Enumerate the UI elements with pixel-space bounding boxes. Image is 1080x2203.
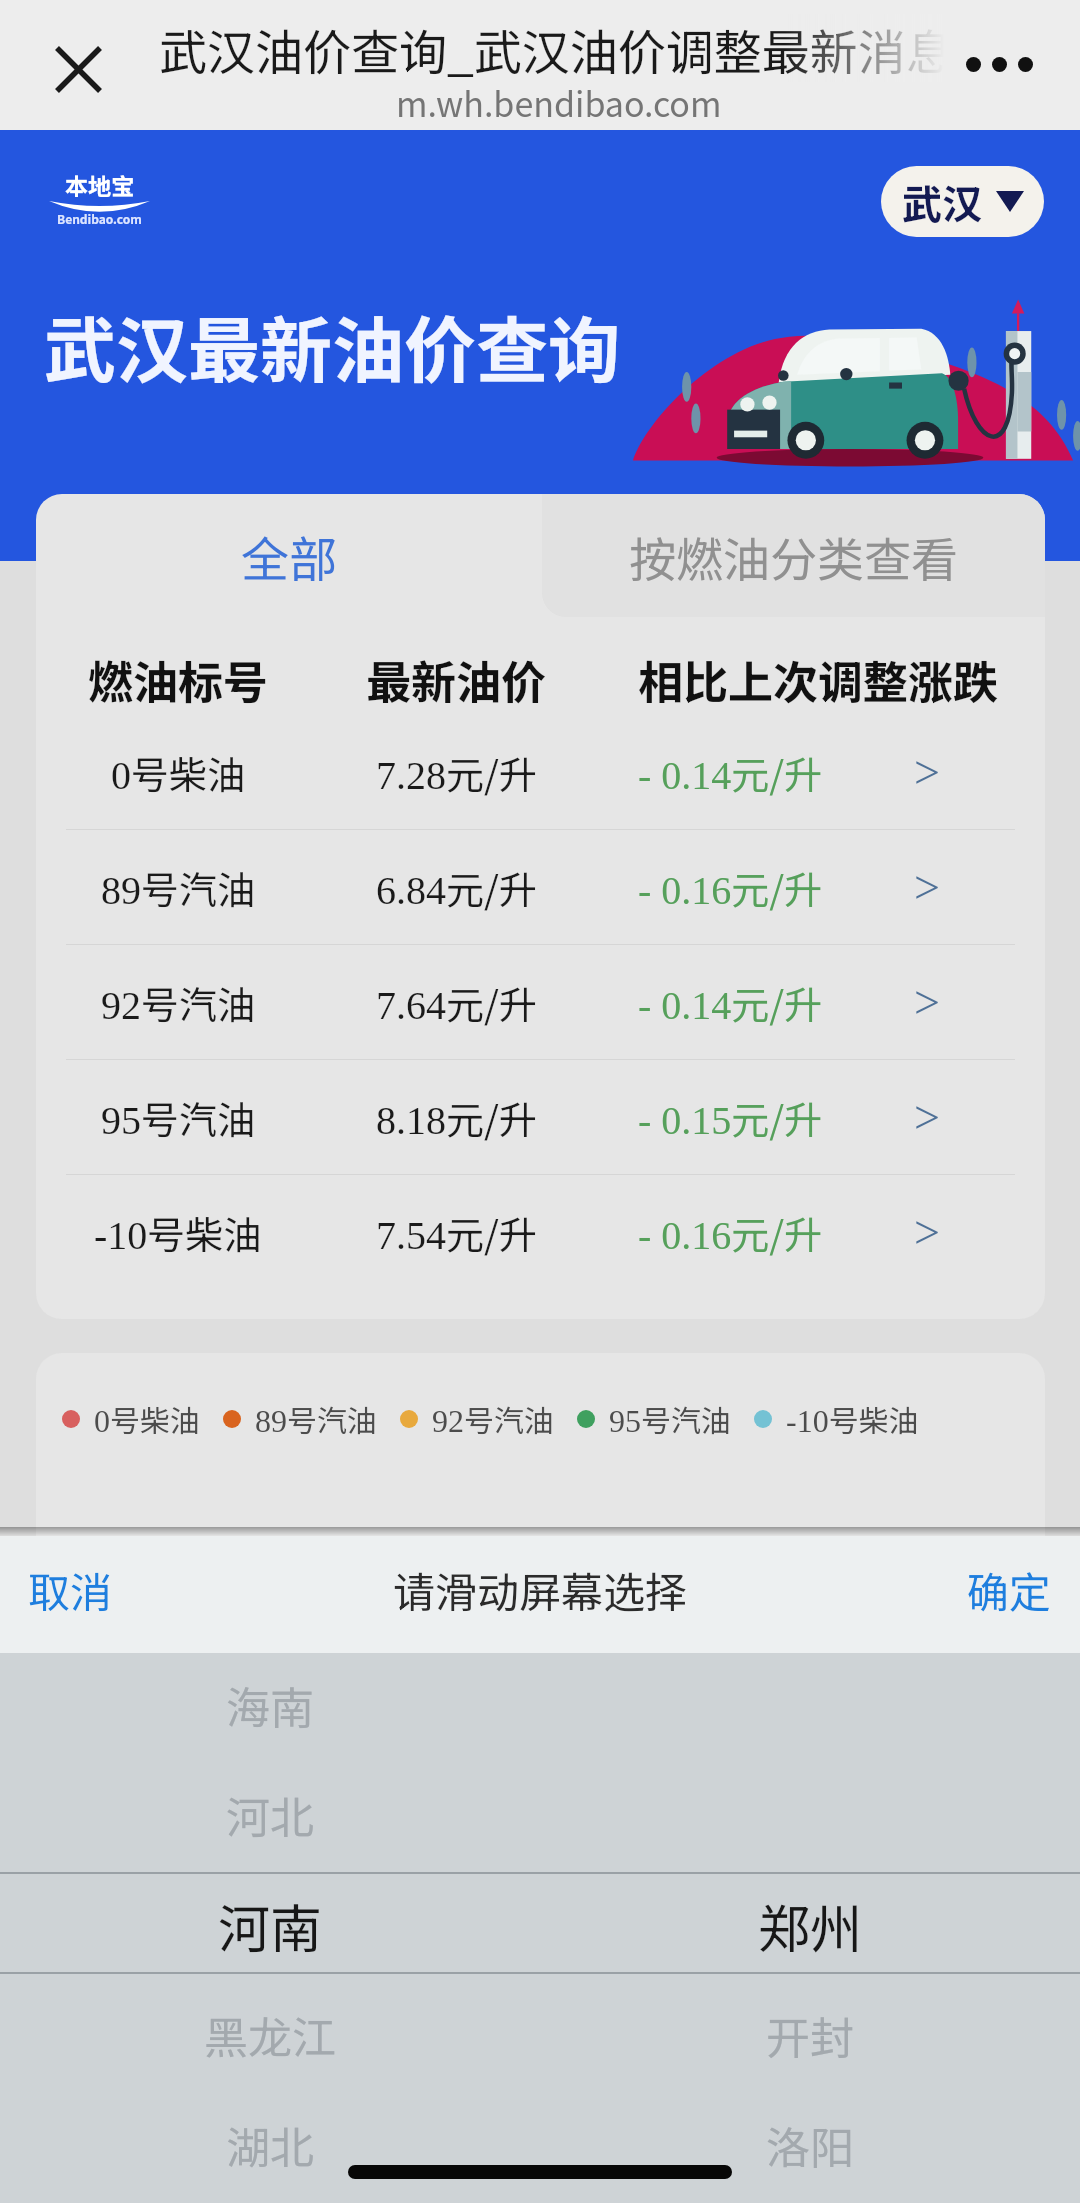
staticText: 7.64元/升 — [376, 975, 537, 1030]
staticText: 本地宝 — [65, 168, 134, 201]
staticText: 河南 — [218, 1888, 323, 1963]
staticText: 7.28元/升 — [376, 745, 537, 800]
button[interactable]: 河南 — [0, 1870, 1080, 1980]
staticText: 6.84元/升 — [376, 860, 537, 915]
button[interactable]: 取消 — [0, 1536, 240, 1643]
staticText: - 0.14元/升 — [638, 975, 823, 1030]
staticText: > — [914, 862, 940, 913]
staticText: 95号汽油 — [609, 1397, 731, 1440]
staticText: 请滑动屏幕选择 — [393, 1559, 688, 1620]
button[interactable]: 89号汽油 — [36, 830, 1045, 944]
staticText: > — [914, 1092, 940, 1143]
button[interactable]: 确定 — [840, 1536, 1080, 1643]
staticText: 相比上次调整涨跌 — [638, 647, 999, 712]
button[interactable]: 黑龙江 — [0, 1980, 1080, 2090]
button[interactable]: -10号柴油 — [36, 1175, 1045, 1289]
staticText: > — [914, 747, 940, 798]
staticText: -10号柴油 — [94, 1205, 262, 1260]
button[interactable]: 武汉 — [881, 166, 1044, 237]
button[interactable]: 河北 — [0, 1760, 1080, 1870]
button[interactable]: Close — [36, 27, 120, 111]
staticText: - 0.15元/升 — [638, 1090, 823, 1145]
staticText: > — [914, 1207, 940, 1258]
staticText: m.wh.bendibao.com — [396, 78, 722, 127]
staticText: 95号汽油 — [101, 1090, 256, 1145]
staticText: 89号汽油 — [255, 1397, 377, 1440]
staticText: 河北 — [226, 1783, 314, 1847]
staticText: 海南 — [226, 1673, 314, 1737]
staticText: 89号汽油 — [101, 860, 256, 915]
staticText: 开封 — [766, 2003, 854, 2067]
staticText: 0号柴油 — [94, 1397, 200, 1440]
staticText: > — [914, 977, 940, 1028]
staticText: Bendibao.com — [57, 210, 142, 227]
staticText: 92号汽油 — [101, 975, 256, 1030]
staticText: 黑龙江 — [204, 2003, 336, 2067]
staticText: 7.54元/升 — [376, 1205, 537, 1260]
button[interactable]: More options — [949, 19, 1049, 109]
staticText: 取消 — [28, 1559, 113, 1620]
staticText: 最新油价 — [366, 647, 547, 712]
staticText: - 0.14元/升 — [638, 745, 823, 800]
staticText: 武汉油价查询_武汉油价调整最新消息 — [159, 14, 945, 82]
staticText: 8.18元/升 — [376, 1090, 537, 1145]
button[interactable]: 按燃油分类查看 — [542, 494, 1045, 617]
staticText: - 0.16元/升 — [638, 1205, 823, 1260]
staticText: 92号汽油 — [432, 1397, 554, 1440]
staticText: 郑州 — [758, 1888, 863, 1963]
staticText: 燃油标号 — [88, 647, 269, 712]
staticText: 按燃油分类查看 — [629, 522, 958, 590]
button[interactable]: 0号柴油 — [36, 715, 1045, 829]
staticText: 全部 — [241, 521, 338, 591]
staticText: -10号柴油 — [786, 1397, 919, 1440]
button[interactable]: 92号汽油 — [36, 945, 1045, 1059]
staticText: 确定 — [967, 1559, 1052, 1620]
staticText: 0号柴油 — [111, 745, 246, 800]
staticText: 武汉 — [902, 173, 982, 231]
button[interactable]: 95号汽油 — [36, 1060, 1045, 1174]
staticText: 洛阳 — [766, 2113, 854, 2177]
button[interactable]: 海南 — [0, 1650, 1080, 1760]
button[interactable]: 湖北 — [0, 2090, 1080, 2200]
button[interactable]: 全部 — [36, 494, 542, 617]
staticText: 武汉最新油价查询 — [44, 293, 621, 397]
staticText: 湖北 — [226, 2113, 314, 2177]
staticText: - 0.16元/升 — [638, 860, 823, 915]
